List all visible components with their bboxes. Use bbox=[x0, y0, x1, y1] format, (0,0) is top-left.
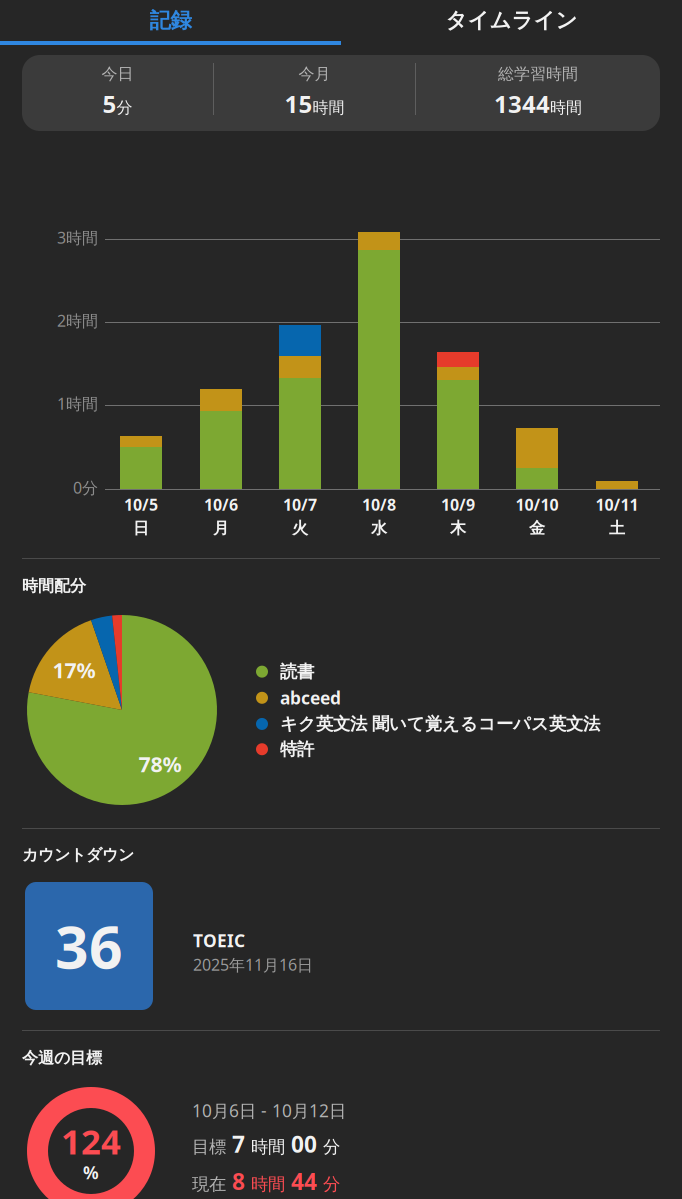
staticText: 1時間 bbox=[57, 393, 98, 414]
staticText: 2025年11月16日 bbox=[193, 954, 313, 975]
staticText: 0分 bbox=[73, 477, 98, 498]
staticText: 3時間 bbox=[57, 227, 98, 248]
staticText: 土 bbox=[609, 518, 625, 538]
staticText: 10/9 bbox=[441, 494, 475, 515]
button[interactable]: 記録 bbox=[0, 0, 341, 41]
staticText: 今月 bbox=[298, 64, 330, 84]
staticText: 1344 bbox=[494, 88, 550, 120]
staticText: 15 bbox=[284, 88, 312, 120]
staticText: 水 bbox=[371, 518, 387, 538]
staticText: 2時間 bbox=[57, 310, 98, 331]
staticText: 17% bbox=[52, 656, 95, 684]
staticText: 今週の目標 bbox=[22, 1048, 102, 1068]
staticText: 記録 bbox=[149, 7, 191, 34]
staticText: 7 bbox=[232, 1129, 245, 1159]
staticText: 金 bbox=[529, 518, 545, 538]
staticText: タイムライン bbox=[445, 7, 577, 34]
staticText: 特許 bbox=[280, 739, 314, 760]
staticText: % bbox=[83, 1161, 99, 1184]
staticText: 時間 bbox=[251, 1173, 285, 1195]
button[interactable]: 36 bbox=[25, 882, 153, 1010]
staticText: 時間 bbox=[550, 98, 582, 117]
staticText: 10/10 bbox=[515, 494, 558, 515]
staticText: 36 bbox=[55, 907, 123, 985]
staticText: 時間 bbox=[251, 1136, 285, 1158]
staticText: カウントダウン bbox=[22, 845, 134, 865]
staticText: 目標 bbox=[192, 1136, 226, 1158]
staticText: 現在 bbox=[192, 1173, 226, 1195]
staticText: 10/11 bbox=[595, 494, 638, 515]
staticText: 木 bbox=[450, 518, 466, 538]
staticText: 月 bbox=[213, 518, 229, 538]
button[interactable]: タイムライン bbox=[341, 0, 682, 41]
staticText: 読書 bbox=[280, 661, 314, 682]
staticText: 分 bbox=[323, 1173, 340, 1195]
staticText: 総学習時間 bbox=[498, 64, 578, 84]
staticText: 78% bbox=[138, 750, 181, 778]
staticText: 44 bbox=[291, 1166, 317, 1196]
staticText: 8 bbox=[232, 1166, 245, 1196]
staticText: 今日 bbox=[101, 64, 133, 84]
staticText: 10/7 bbox=[283, 494, 317, 515]
staticText: キク英文法 聞いて覚えるコーパス英文法 bbox=[280, 713, 600, 735]
staticText: 124 bbox=[61, 1118, 121, 1164]
staticText: 火 bbox=[292, 518, 308, 538]
staticText: 時間 bbox=[312, 98, 344, 117]
staticText: 10/8 bbox=[362, 494, 396, 515]
staticText: 10/5 bbox=[124, 494, 158, 515]
staticText: TOEIC bbox=[193, 929, 245, 952]
staticText: 10月6日 - 10月12日 bbox=[192, 1099, 346, 1122]
staticText: 5 bbox=[102, 88, 116, 120]
staticText: 10/6 bbox=[204, 494, 238, 515]
staticText: 00 bbox=[291, 1129, 317, 1159]
staticText: 分 bbox=[116, 98, 132, 117]
staticText: 日 bbox=[133, 518, 149, 538]
staticText: 時間配分 bbox=[22, 576, 86, 596]
staticText: 分 bbox=[323, 1136, 340, 1158]
staticText: abceed bbox=[280, 686, 341, 709]
